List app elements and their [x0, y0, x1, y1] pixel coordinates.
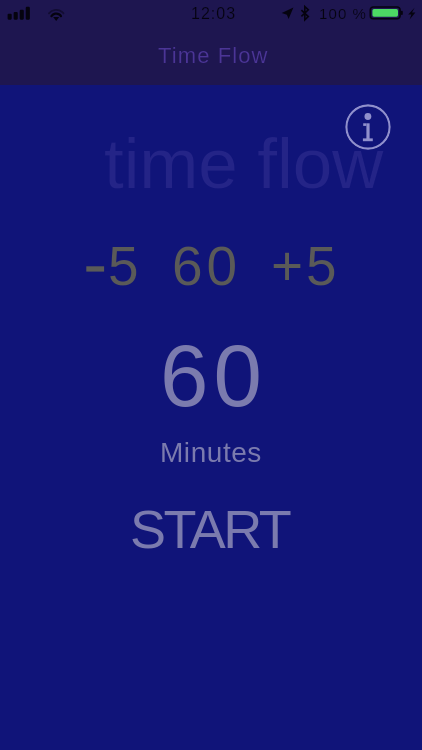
- staticText: 12:03: [191, 5, 237, 23]
- button[interactable]: +5: [259, 227, 352, 283]
- staticText: 5: [108, 235, 139, 291]
- button[interactable]: 60: [160, 227, 250, 283]
- button[interactable]: START: [124, 494, 294, 554]
- staticText: time flow: [104, 124, 384, 203]
- staticText: 60: [160, 327, 267, 424]
- button[interactable]: Info: [345, 104, 391, 150]
- staticText: 100 %: [319, 5, 368, 22]
- staticText: Minutes: [160, 437, 262, 468]
- staticText: Time Flow: [158, 43, 269, 68]
- button[interactable]: 5: [71, 227, 154, 283]
- staticText: 60: [172, 235, 242, 291]
- staticText: START: [130, 499, 290, 559]
- staticText: +5: [271, 235, 340, 291]
